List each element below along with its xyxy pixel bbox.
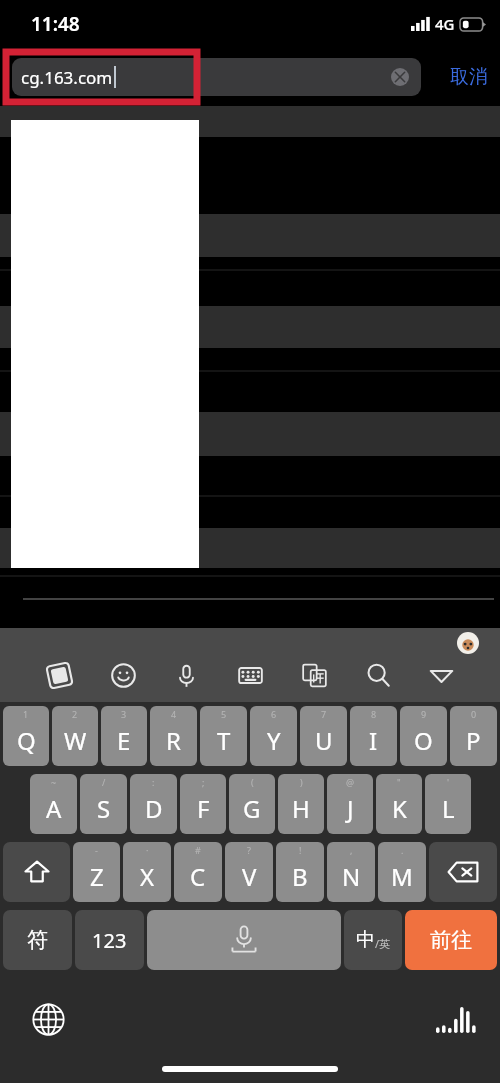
button[interactable]: :: [130, 774, 177, 834]
staticText: 4G: [435, 14, 455, 34]
staticText: G: [243, 792, 261, 825]
staticText: D: [145, 792, 163, 825]
staticText: S: [97, 792, 111, 825]
button[interactable]: 3: [101, 706, 147, 766]
staticText: F: [197, 792, 210, 825]
staticText: 4: [171, 708, 177, 720]
staticText: /英: [375, 936, 391, 951]
button[interactable]: ;: [180, 774, 226, 834]
staticText: O: [414, 724, 433, 757]
staticText: N: [342, 860, 361, 893]
button[interactable]: 符: [3, 910, 72, 970]
button[interactable]: Sogou input: [38, 654, 80, 696]
staticText: 前往: [430, 927, 472, 953]
staticText: U: [315, 724, 333, 757]
staticText: ): [300, 776, 303, 788]
staticText: T: [217, 724, 231, 757]
button[interactable]: #: [174, 842, 222, 902]
staticText: :: [152, 776, 155, 788]
staticText: M: [391, 860, 413, 893]
button[interactable]: Emoji: [102, 654, 144, 696]
staticText: 123: [92, 927, 127, 954]
button[interactable]: ?: [225, 842, 273, 902]
staticText: 符: [27, 927, 48, 953]
staticText: 2: [72, 708, 78, 720]
button[interactable]: @: [327, 774, 373, 834]
button[interactable]: Translate: [293, 654, 335, 696]
button[interactable]: Hide keyboard: [420, 654, 462, 696]
button[interactable]: .: [378, 842, 426, 902]
button[interactable]: 中: [344, 910, 402, 970]
staticText: ,: [350, 844, 353, 856]
staticText: P: [466, 724, 481, 757]
staticText: 8: [371, 708, 377, 720]
button[interactable]: 5: [200, 706, 247, 766]
button[interactable]: !: [276, 842, 324, 902]
staticText: V: [242, 860, 257, 893]
button[interactable]: Change language: [26, 997, 70, 1041]
button[interactable]: 取消: [444, 59, 494, 95]
staticText: 中: [356, 928, 375, 952]
staticText: !: [299, 844, 302, 856]
button[interactable]: ': [425, 774, 471, 834]
staticText: ~: [51, 776, 57, 788]
staticText: .: [401, 844, 404, 856]
staticText: @: [346, 776, 355, 788]
staticText: ;: [202, 776, 205, 788]
button[interactable]: /: [80, 774, 127, 834]
button[interactable]: Clear text: [388, 65, 412, 89]
button[interactable]: ": [376, 774, 422, 834]
button[interactable]: 前往: [405, 910, 497, 970]
button[interactable]: 4: [150, 706, 197, 766]
button[interactable]: Account: [457, 632, 479, 654]
staticText: W: [64, 724, 87, 757]
staticText: C: [190, 860, 206, 893]
staticText: L: [442, 792, 455, 825]
button[interactable]: Keyboard layout: [229, 654, 271, 696]
staticText: Y: [267, 724, 281, 757]
staticText: 11:48: [31, 11, 80, 37]
button[interactable]: 123: [75, 910, 144, 970]
staticText: R: [166, 724, 181, 757]
button[interactable]: 7: [300, 706, 347, 766]
button[interactable]: 2: [52, 706, 98, 766]
staticText: #: [195, 844, 201, 856]
button[interactable]: Space / voice input: [147, 910, 341, 970]
button[interactable]: (: [229, 774, 275, 834]
staticText: 5: [221, 708, 227, 720]
staticText: 0: [471, 708, 477, 720]
button[interactable]: -: [73, 842, 120, 902]
button[interactable]: 6: [250, 706, 297, 766]
staticText: 1: [23, 708, 29, 720]
button[interactable]: ): [278, 774, 324, 834]
staticText: 6: [271, 708, 277, 720]
staticText: 3: [121, 708, 127, 720]
button[interactable]: Search: [357, 654, 399, 696]
staticText: H: [292, 792, 310, 825]
staticText: 7: [321, 708, 327, 720]
button[interactable]: Voice input: [165, 654, 207, 696]
staticText: 9: [421, 708, 427, 720]
staticText: I: [369, 724, 378, 757]
button[interactable]: ~: [30, 774, 77, 834]
staticText: ": [397, 776, 401, 788]
button[interactable]: ·: [123, 842, 171, 902]
staticText: 取消: [450, 65, 488, 89]
staticText: cg.163.com: [21, 66, 113, 89]
staticText: K: [392, 792, 407, 825]
button[interactable]: 9: [400, 706, 447, 766]
staticText: A: [46, 792, 62, 825]
button[interactable]: Shift: [3, 842, 70, 902]
staticText: Z: [90, 860, 104, 893]
button[interactable]: cg.163.com: [12, 58, 421, 96]
staticText: B: [292, 860, 308, 893]
button[interactable]: ,: [327, 842, 375, 902]
button[interactable]: 8: [350, 706, 397, 766]
staticText: (: [251, 776, 254, 788]
staticText: ?: [247, 844, 251, 856]
button[interactable]: Backspace: [429, 842, 497, 902]
staticText: E: [117, 724, 131, 757]
staticText: -: [95, 844, 98, 856]
button[interactable]: 1: [3, 706, 49, 766]
button[interactable]: 0: [450, 706, 497, 766]
